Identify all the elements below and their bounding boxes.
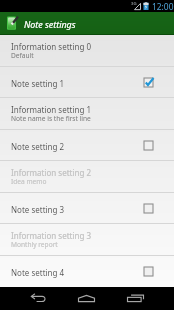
button[interactable]: Information setting 2 <box>0 161 174 192</box>
button[interactable]: Note setting 3 <box>0 193 174 223</box>
staticText: Idea memo <box>11 177 47 186</box>
staticText: Note name is the first line <box>11 114 91 123</box>
button[interactable]: Note setting 4 <box>0 256 174 286</box>
button[interactable]: Home <box>69 287 105 310</box>
button[interactable]: Information setting 1 <box>0 98 174 129</box>
button[interactable]: Recents <box>118 287 154 310</box>
staticText: Note settings <box>24 18 76 30</box>
button[interactable]: Note setting 1 <box>0 67 174 97</box>
staticText: Note setting 2 <box>11 141 65 152</box>
staticText: Default <box>11 51 34 60</box>
button[interactable]: Information setting 3 <box>0 224 174 255</box>
staticText: Note setting 3 <box>11 204 65 215</box>
staticText: Note setting 4 <box>11 267 65 278</box>
staticText: Note setting 1 <box>11 78 65 89</box>
staticText: Information setting 2 <box>11 167 92 178</box>
staticText: 3G <box>131 1 137 7</box>
staticText: Information setting 1 <box>11 104 92 115</box>
staticText: Information setting 0 <box>11 41 92 52</box>
staticText: Monthly report <box>11 240 58 249</box>
button[interactable]: Note setting 2 <box>0 130 174 160</box>
button[interactable]: Information setting 0 <box>0 35 174 66</box>
staticText: Information setting 3 <box>11 230 92 241</box>
staticText: 12:00 <box>152 1 174 12</box>
button[interactable]: Back <box>20 287 56 310</box>
